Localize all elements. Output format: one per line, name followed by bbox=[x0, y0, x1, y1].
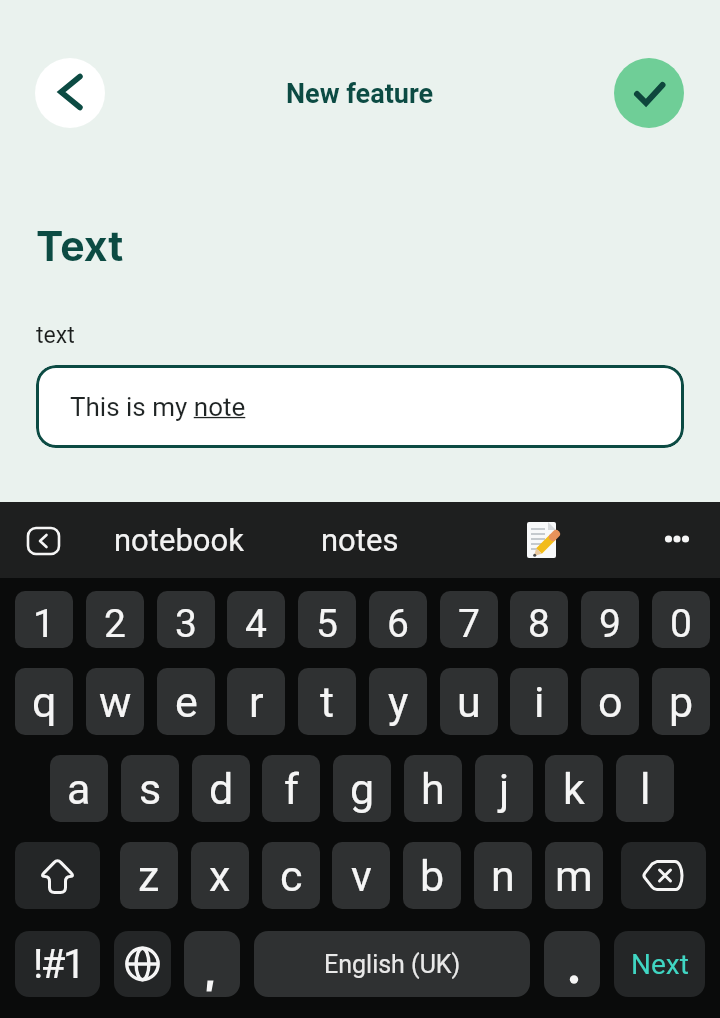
staticText: h bbox=[421, 764, 445, 814]
staticText: a bbox=[67, 764, 91, 814]
button[interactable]: 9 bbox=[581, 591, 639, 648]
button[interactable] bbox=[114, 931, 171, 997]
staticText: w bbox=[99, 677, 132, 727]
staticText: notebook bbox=[114, 522, 244, 558]
button[interactable]: r bbox=[227, 668, 285, 735]
staticText: g bbox=[350, 764, 375, 814]
button[interactable] bbox=[650, 502, 706, 578]
button[interactable]: This is my note bbox=[36, 365, 684, 448]
staticText: r bbox=[249, 677, 264, 727]
button[interactable]: x bbox=[191, 842, 249, 909]
button[interactable]: 0 bbox=[652, 591, 710, 648]
staticText: f bbox=[284, 764, 299, 814]
staticText: m bbox=[555, 851, 593, 901]
staticText: p bbox=[669, 677, 694, 727]
staticText: j bbox=[499, 764, 510, 814]
staticText: v bbox=[351, 851, 372, 901]
staticText: o bbox=[598, 677, 623, 727]
button[interactable]: s bbox=[121, 755, 179, 822]
button[interactable]: 2 bbox=[86, 591, 144, 648]
button[interactable]: e bbox=[157, 668, 215, 735]
staticText: e bbox=[175, 677, 198, 727]
staticText: 1 bbox=[33, 601, 55, 647]
button[interactable]: u bbox=[440, 668, 498, 735]
staticText: Next bbox=[631, 948, 689, 981]
staticText: !#1 bbox=[33, 941, 83, 988]
staticText: u bbox=[457, 677, 481, 727]
button[interactable]: 6 bbox=[369, 591, 427, 648]
button[interactable]: y bbox=[369, 668, 427, 735]
staticText: 5 bbox=[316, 601, 338, 647]
button[interactable]: notebook bbox=[86, 502, 271, 578]
staticText: 9 bbox=[599, 601, 621, 647]
button[interactable]: 8 bbox=[510, 591, 568, 648]
button[interactable]: n bbox=[474, 842, 532, 909]
button[interactable]: 1 bbox=[15, 591, 73, 648]
staticText: x bbox=[209, 851, 231, 901]
button[interactable]: h bbox=[404, 755, 462, 822]
staticText: 7 bbox=[458, 601, 480, 647]
staticText: b bbox=[420, 851, 445, 901]
staticText: 3 bbox=[175, 601, 197, 647]
button[interactable] bbox=[614, 58, 684, 128]
staticText: 6 bbox=[387, 601, 409, 647]
button[interactable]: 4 bbox=[227, 591, 285, 648]
button[interactable]: l bbox=[616, 755, 674, 822]
button[interactable]: English (UK) bbox=[254, 931, 530, 997]
button[interactable]: Next bbox=[614, 931, 705, 997]
button[interactable]: v bbox=[332, 842, 390, 909]
button[interactable] bbox=[621, 842, 706, 909]
staticText: notes bbox=[321, 522, 399, 558]
staticText: t bbox=[320, 677, 335, 727]
staticText: This is my note bbox=[70, 392, 246, 422]
button[interactable] bbox=[15, 842, 100, 909]
staticText: y bbox=[388, 677, 409, 727]
button[interactable]: o bbox=[581, 668, 639, 735]
button[interactable]: t bbox=[298, 668, 356, 735]
staticText: z bbox=[138, 851, 160, 901]
staticText: English (UK) bbox=[324, 950, 461, 979]
button[interactable] bbox=[524, 520, 560, 560]
staticText: l bbox=[640, 764, 651, 814]
button[interactable] bbox=[26, 526, 62, 556]
button[interactable] bbox=[35, 58, 105, 128]
button[interactable]: notes bbox=[288, 502, 432, 578]
staticText: New feature bbox=[286, 78, 434, 110]
button[interactable]: z bbox=[120, 842, 178, 909]
button[interactable]: k bbox=[545, 755, 603, 822]
staticText: 0 bbox=[670, 601, 692, 647]
staticText: s bbox=[139, 764, 162, 814]
staticText: Text bbox=[36, 221, 124, 271]
button[interactable] bbox=[184, 931, 240, 997]
button[interactable]: m bbox=[545, 842, 603, 909]
button[interactable]: j bbox=[475, 755, 533, 822]
button[interactable]: q bbox=[15, 668, 73, 735]
button[interactable]: d bbox=[192, 755, 250, 822]
button[interactable]: a bbox=[50, 755, 108, 822]
staticText: c bbox=[280, 851, 303, 901]
button[interactable]: i bbox=[510, 668, 568, 735]
button[interactable]: 5 bbox=[298, 591, 356, 648]
button[interactable] bbox=[544, 931, 600, 997]
staticText: text bbox=[36, 322, 75, 349]
button[interactable]: g bbox=[333, 755, 391, 822]
staticText: k bbox=[563, 764, 585, 814]
button[interactable]: !#1 bbox=[15, 931, 100, 997]
button[interactable]: f bbox=[262, 755, 320, 822]
staticText: d bbox=[209, 764, 234, 814]
button[interactable]: w bbox=[86, 668, 144, 735]
staticText: 4 bbox=[245, 601, 267, 647]
staticText: q bbox=[32, 677, 57, 727]
staticText: n bbox=[491, 851, 515, 901]
button[interactable]: p bbox=[652, 668, 710, 735]
staticText: i bbox=[534, 677, 545, 727]
button[interactable]: b bbox=[403, 842, 461, 909]
button[interactable]: 7 bbox=[440, 591, 498, 648]
staticText: 8 bbox=[528, 601, 550, 647]
button[interactable]: c bbox=[262, 842, 320, 909]
staticText: 2 bbox=[104, 601, 126, 647]
button[interactable]: 3 bbox=[157, 591, 215, 648]
